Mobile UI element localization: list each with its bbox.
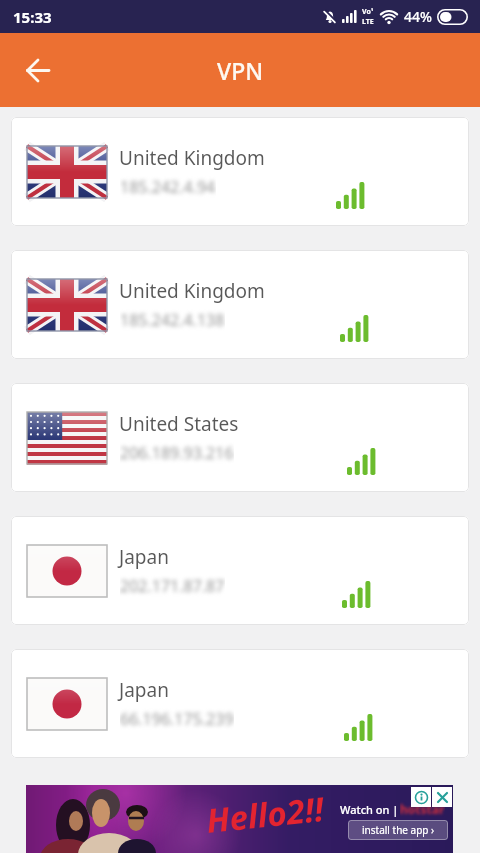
button[interactable]: install the app › (348, 820, 448, 840)
staticText: Vo¹ (362, 7, 374, 17)
staticText: 66.196.175.239 (120, 708, 234, 730)
button[interactable]: Hello2!! (26, 785, 453, 853)
staticText: 15:33 (13, 7, 52, 27)
staticText: 185.242.4.94 (120, 176, 216, 198)
staticText: hotstar (400, 801, 445, 817)
staticText: 185.242.4.138 (120, 309, 225, 331)
button[interactable] (432, 787, 452, 807)
staticText: 206.189.93.216 (120, 442, 234, 464)
staticText: LTE (362, 17, 374, 27)
staticText: Hello2!! (204, 786, 326, 843)
button[interactable]: United States (11, 383, 469, 492)
staticText: install the app › (362, 823, 435, 837)
staticText: United Kingdom (119, 145, 265, 171)
staticText: Japan (119, 544, 169, 570)
staticText: Watch on | (340, 802, 399, 817)
staticText: United Kingdom (119, 278, 265, 304)
staticText: United States (119, 411, 239, 437)
button[interactable]: United Kingdom (11, 117, 469, 226)
button[interactable]: Japan (11, 649, 469, 758)
button[interactable]: United Kingdom (11, 250, 469, 359)
staticText: Japan (119, 677, 169, 703)
button[interactable] (411, 787, 431, 807)
staticText: VPN (217, 55, 264, 86)
button[interactable]: Japan (11, 516, 469, 625)
button[interactable] (16, 48, 60, 92)
staticText: 44% (404, 7, 432, 26)
staticText: 202.171.87.87 (120, 575, 225, 597)
